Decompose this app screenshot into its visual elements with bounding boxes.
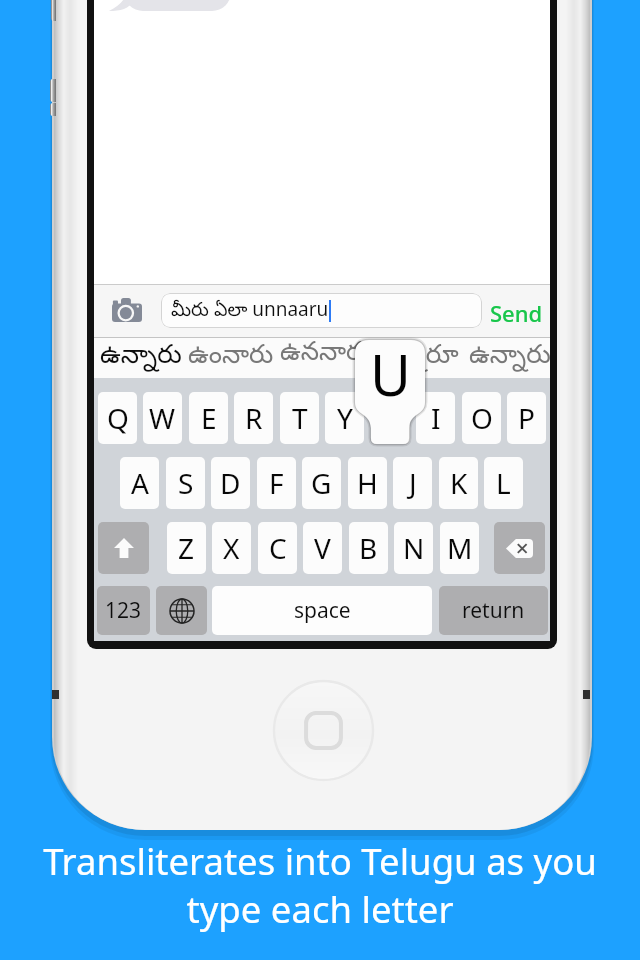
staticText: K — [450, 464, 468, 502]
button[interactable]: Z — [167, 522, 206, 574]
button[interactable]: ఉంనారు — [188, 337, 274, 378]
staticText: S — [178, 464, 194, 502]
button[interactable]: C — [258, 522, 297, 574]
staticText: O — [471, 399, 493, 437]
button[interactable]: Shift — [98, 522, 149, 574]
button[interactable]: N — [394, 522, 433, 574]
staticText: E — [201, 399, 217, 437]
button[interactable]: U — [371, 392, 410, 444]
staticText: మీరు ఏలా unnaaru — [171, 296, 329, 325]
button[interactable]: O — [462, 392, 501, 444]
button[interactable]: F — [257, 457, 296, 509]
staticText: ఉన్నారు — [100, 340, 182, 375]
button[interactable]: ఉననారు — [280, 337, 366, 378]
button[interactable]: K — [439, 457, 478, 509]
button[interactable]: J — [393, 457, 432, 509]
button[interactable]: Send — [487, 298, 545, 324]
staticText: Y — [337, 399, 353, 437]
button[interactable]: space — [212, 586, 432, 635]
staticText: N — [403, 529, 425, 567]
staticText: F — [269, 464, 284, 502]
staticText: W — [149, 399, 176, 437]
button[interactable]: H — [348, 457, 387, 509]
button[interactable]: return — [439, 586, 548, 635]
button[interactable]: Q — [98, 392, 137, 444]
staticText: B — [359, 529, 378, 567]
button[interactable]: Camera — [112, 298, 142, 322]
staticText: U — [370, 336, 411, 412]
staticText: return — [462, 596, 525, 625]
staticText: space — [294, 596, 351, 625]
staticText: H — [357, 464, 378, 502]
staticText: ఉన్నారు — [469, 340, 551, 375]
button[interactable]: E — [189, 392, 228, 444]
staticText: M — [447, 529, 473, 567]
button[interactable]: D — [211, 457, 250, 509]
button[interactable]: ఉన్నారు — [98, 337, 184, 378]
button[interactable]: Change keyboard — [156, 586, 207, 635]
staticText: ఉన్నరూ — [379, 340, 459, 375]
staticText: ఉంనారు — [188, 340, 274, 375]
staticText: T — [292, 399, 308, 437]
staticText: A — [131, 464, 149, 502]
button[interactable]: I — [416, 392, 455, 444]
button[interactable]: V — [303, 522, 342, 574]
button[interactable]: B — [349, 522, 388, 574]
button[interactable]: Home — [273, 680, 374, 781]
button[interactable]: A — [120, 457, 159, 509]
staticText: Q — [107, 399, 129, 437]
staticText: X — [223, 529, 240, 567]
staticText: Z — [178, 529, 195, 567]
staticText: I — [431, 399, 441, 437]
button[interactable]: మీరు ఏలా unnaaru — [161, 293, 482, 328]
button[interactable]: 123 — [97, 586, 150, 635]
button[interactable]: Y — [325, 392, 364, 444]
button[interactable]: ఉన్నరూ — [376, 337, 462, 378]
button[interactable]: X — [212, 522, 251, 574]
staticText: D — [220, 464, 241, 502]
staticText: P — [518, 399, 535, 437]
button[interactable]: M — [440, 522, 479, 574]
button[interactable]: Backspace — [494, 522, 545, 574]
button[interactable]: ఉన్నారు — [467, 337, 553, 378]
button[interactable]: G — [302, 457, 341, 509]
staticText: V — [314, 529, 331, 567]
button[interactable]: W — [143, 392, 182, 444]
button[interactable]: T — [280, 392, 319, 444]
staticText: Send — [490, 298, 543, 324]
staticText: R — [245, 399, 263, 437]
button[interactable]: P — [507, 392, 546, 444]
staticText: C — [269, 529, 287, 567]
staticText: L — [496, 464, 511, 502]
staticText: 123 — [105, 596, 142, 625]
staticText: J — [409, 464, 417, 502]
staticText: Transliterates into Telugu as you type e… — [0, 836, 640, 934]
staticText: G — [311, 464, 332, 502]
button[interactable]: L — [484, 457, 523, 509]
staticText: ఉననారు — [280, 337, 366, 378]
button[interactable]: S — [166, 457, 205, 509]
button[interactable]: R — [234, 392, 273, 444]
